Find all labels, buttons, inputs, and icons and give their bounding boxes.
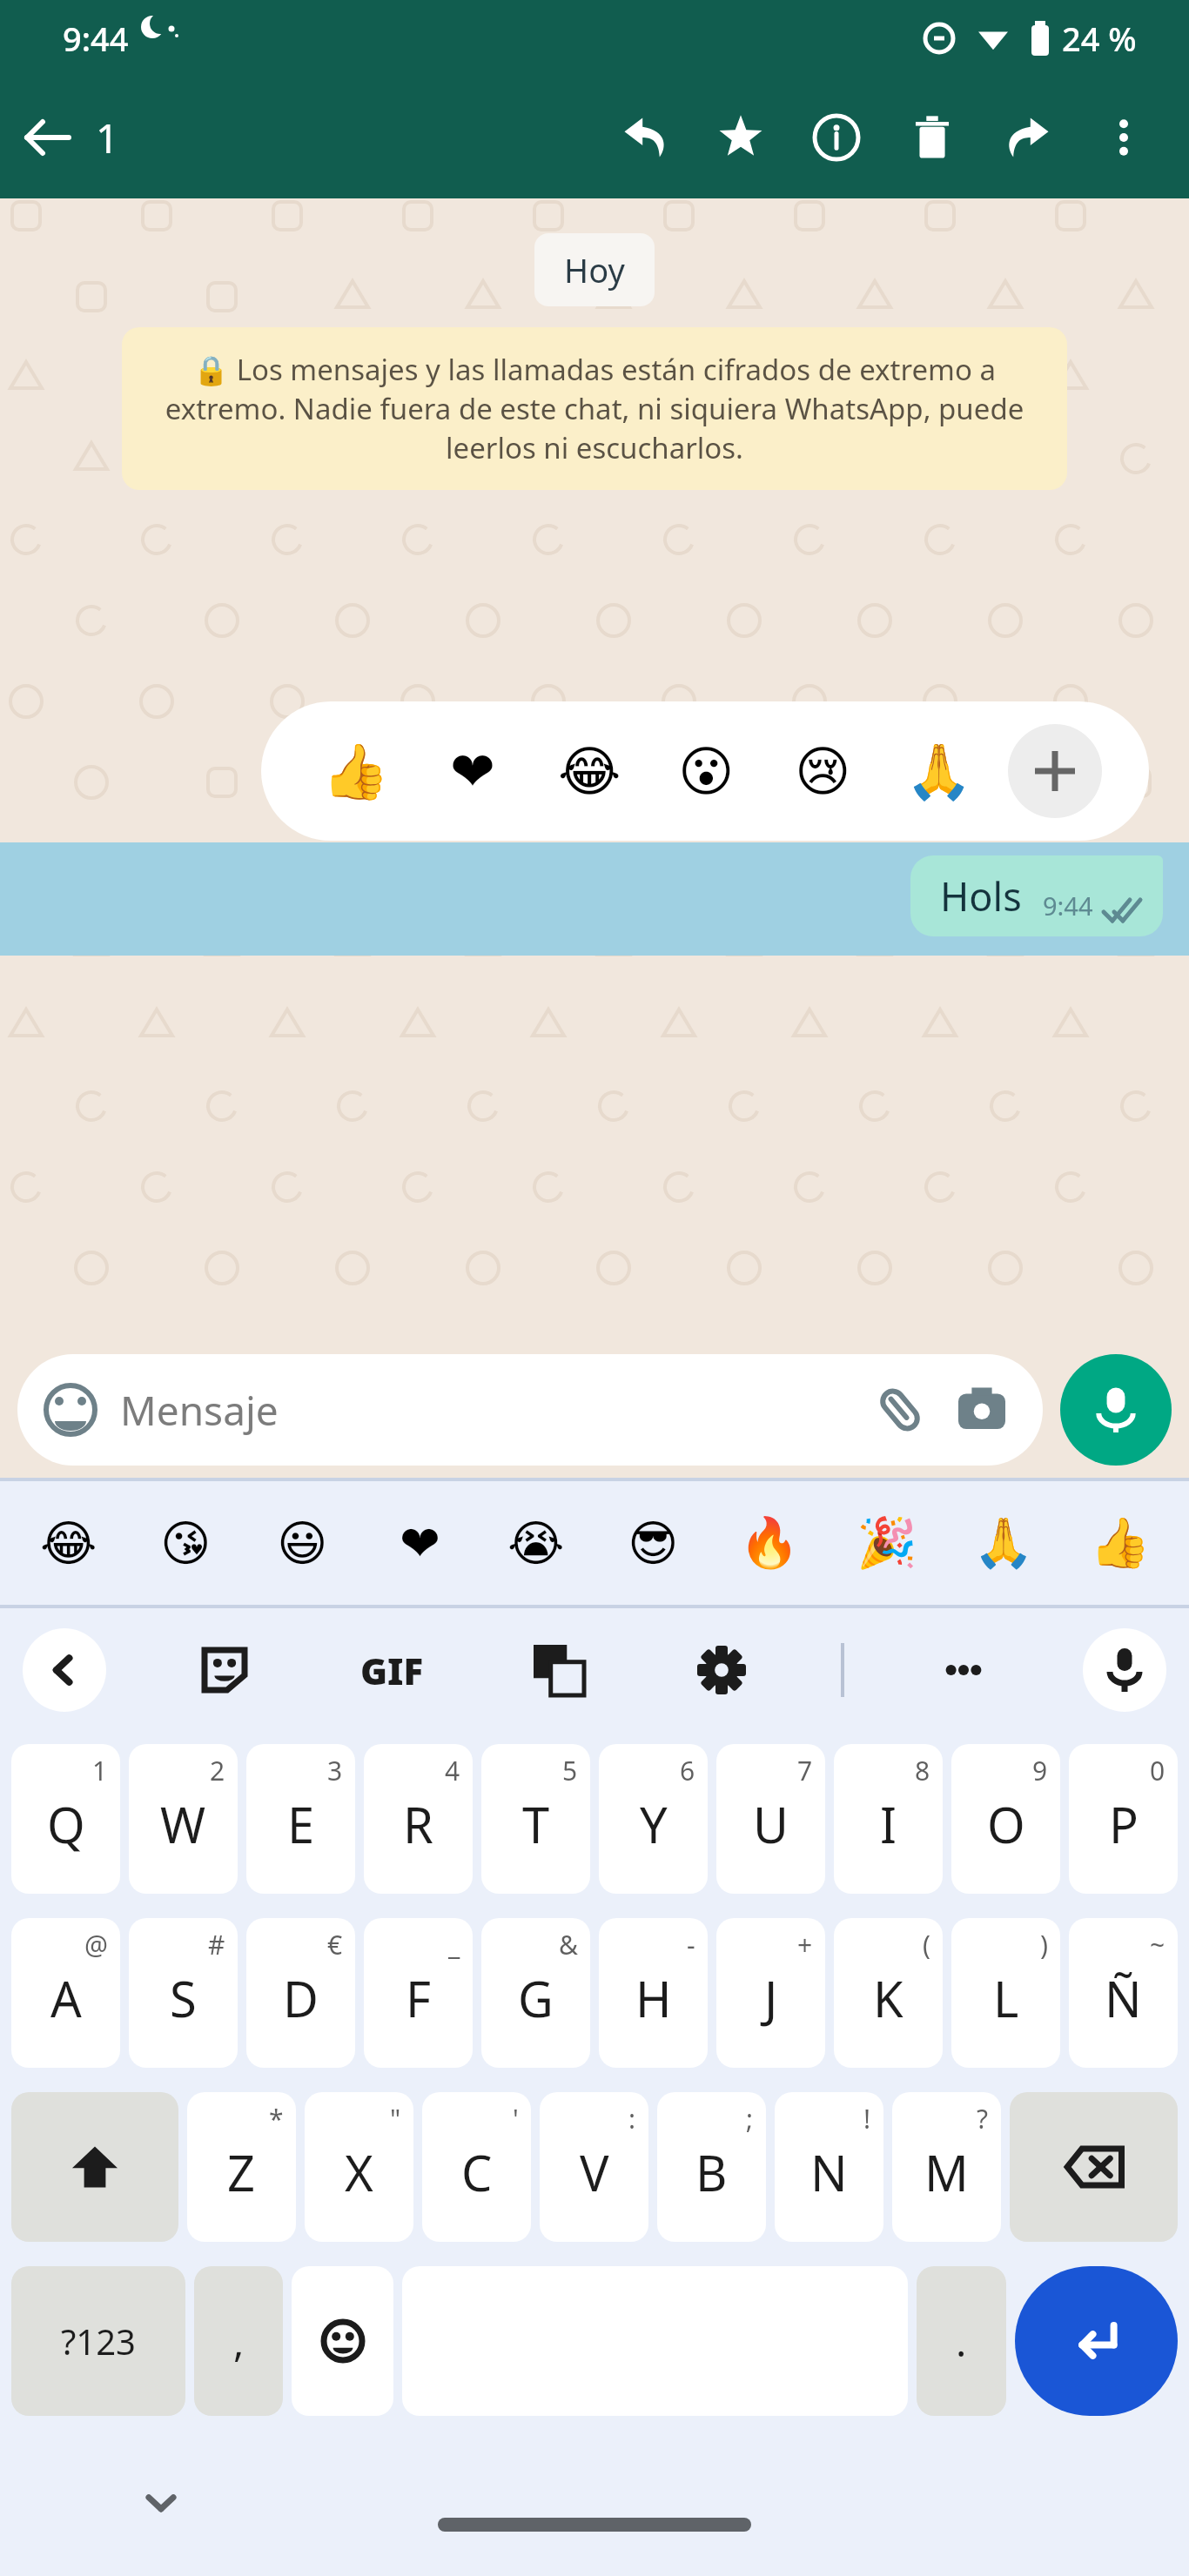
button[interactable]: ' (422, 2092, 531, 2242)
button[interactable]: # (129, 1918, 238, 2068)
staticText: Y (640, 1791, 668, 1857)
button[interactable]: 4 (364, 1744, 473, 1894)
button[interactable]: 5 (481, 1744, 590, 1894)
button[interactable]: Voice message (1060, 1354, 1172, 1466)
button[interactable]: ; (657, 2092, 766, 2242)
staticText: - (687, 1927, 695, 1962)
button[interactable]: : (540, 2092, 648, 2242)
button[interactable]: Camera (947, 1375, 1017, 1445)
staticText: 1 (96, 111, 119, 165)
button[interactable]: 9 (951, 1744, 1060, 1894)
button[interactable]: 😎 (605, 1495, 701, 1591)
button[interactable]: € (246, 1918, 355, 2068)
button[interactable]: More reactions (1008, 724, 1102, 818)
button[interactable]: ❤️ (372, 1495, 467, 1591)
button[interactable]: & (481, 1918, 590, 2068)
staticText: 9:44 (1043, 889, 1093, 922)
staticText: . (956, 2314, 967, 2369)
button[interactable]: - (599, 1918, 708, 2068)
button[interactable]: Emoji (292, 2266, 393, 2416)
button[interactable]: 😃 (254, 1495, 350, 1591)
button[interactable]: Backspace (1010, 2092, 1178, 2242)
staticText: 0 (1150, 1753, 1165, 1788)
button[interactable]: Mensaje (44, 1354, 1017, 1466)
button[interactable]: GIF (344, 1622, 440, 1718)
staticText: 😢 (795, 740, 851, 802)
button[interactable]: More (920, 1627, 1007, 1714)
button[interactable]: Hoy (564, 247, 625, 292)
button[interactable]: ? (892, 2092, 1001, 2242)
button[interactable]: Star (693, 90, 789, 185)
staticText: ❤️ (450, 740, 495, 802)
button[interactable]: 7 (716, 1744, 825, 1894)
button[interactable]: Delete (884, 90, 980, 185)
button[interactable]: 🎉 (839, 1495, 935, 1591)
button[interactable]: 🙏 (956, 1495, 1051, 1591)
button[interactable]: 2 (129, 1744, 238, 1894)
button[interactable]: Back (0, 90, 96, 185)
staticText: 🙏 (973, 1514, 1034, 1572)
staticText: , (233, 2314, 245, 2369)
button[interactable]: 3 (246, 1744, 355, 1894)
button[interactable]: 👍 (1072, 1495, 1168, 1591)
button[interactable]: 6 (599, 1744, 708, 1894)
button[interactable]: Settings (678, 1627, 765, 1714)
button[interactable]: * (187, 2092, 296, 2242)
button[interactable]: 🙏 (891, 723, 987, 819)
button[interactable]: Hols (940, 869, 1140, 922)
button[interactable]: 😘 (138, 1495, 233, 1591)
button[interactable]: Stickers (181, 1627, 268, 1714)
staticText: R (403, 1791, 433, 1857)
button[interactable]: Forward (980, 90, 1076, 185)
staticText: Q (47, 1791, 85, 1857)
staticText: 🔒 Los mensajes y las llamadas están cifr… (153, 350, 1036, 467)
button[interactable]: 😂 (541, 723, 637, 819)
button[interactable]: Info (789, 90, 884, 185)
button[interactable]: ! (775, 2092, 883, 2242)
button[interactable]: Reply (597, 90, 693, 185)
button[interactable]: 👍 (308, 723, 404, 819)
button[interactable]: Comma (194, 2266, 283, 2416)
button[interactable]: Hide keyboard (131, 2472, 191, 2532)
staticText: M (924, 2139, 969, 2205)
button[interactable]: Translate (515, 1627, 602, 1714)
staticText: C (461, 2139, 493, 2205)
button[interactable]: ) (951, 1918, 1060, 2068)
button[interactable]: Back (23, 1628, 106, 1712)
button[interactable]: ❤️ (425, 723, 521, 819)
button[interactable]: Enter (1015, 2266, 1178, 2416)
staticText: K (873, 1965, 904, 2031)
staticText: ? (977, 2101, 989, 2137)
staticText: H (635, 1965, 672, 2031)
button[interactable]: 😂 (21, 1495, 117, 1591)
button[interactable]: ~ (1069, 1918, 1178, 2068)
button[interactable]: More options (1076, 90, 1172, 185)
button[interactable]: 1 (11, 1744, 120, 1894)
button[interactable]: Voice input (1083, 1628, 1166, 1712)
button[interactable]: 😮 (658, 723, 754, 819)
staticText: ( (923, 1927, 930, 1962)
button[interactable]: @ (11, 1918, 120, 2068)
button[interactable]: 😢 (775, 723, 870, 819)
staticText: B (695, 2139, 728, 2205)
staticText: T (522, 1791, 550, 1857)
staticText: P (1109, 1791, 1139, 1857)
staticText: 😘 (160, 1515, 212, 1572)
staticText: ! (863, 2101, 871, 2137)
button[interactable]: 8 (834, 1744, 943, 1894)
button[interactable]: 0 (1069, 1744, 1178, 1894)
button[interactable]: Symbols (11, 2266, 185, 2416)
button[interactable]: 🔥 (722, 1495, 817, 1591)
button[interactable]: _ (364, 1918, 473, 2068)
staticText: 1 (92, 1753, 108, 1788)
button[interactable]: Attach (865, 1375, 935, 1445)
staticText: 🔥 (739, 1514, 800, 1572)
button[interactable]: ( (834, 1918, 943, 2068)
staticText: S (170, 1965, 197, 2031)
button[interactable]: Shift (11, 2092, 178, 2242)
button[interactable]: 😭 (488, 1495, 584, 1591)
button[interactable]: Period (917, 2266, 1006, 2416)
button[interactable]: + (716, 1918, 825, 2068)
button[interactable]: " (305, 2092, 413, 2242)
